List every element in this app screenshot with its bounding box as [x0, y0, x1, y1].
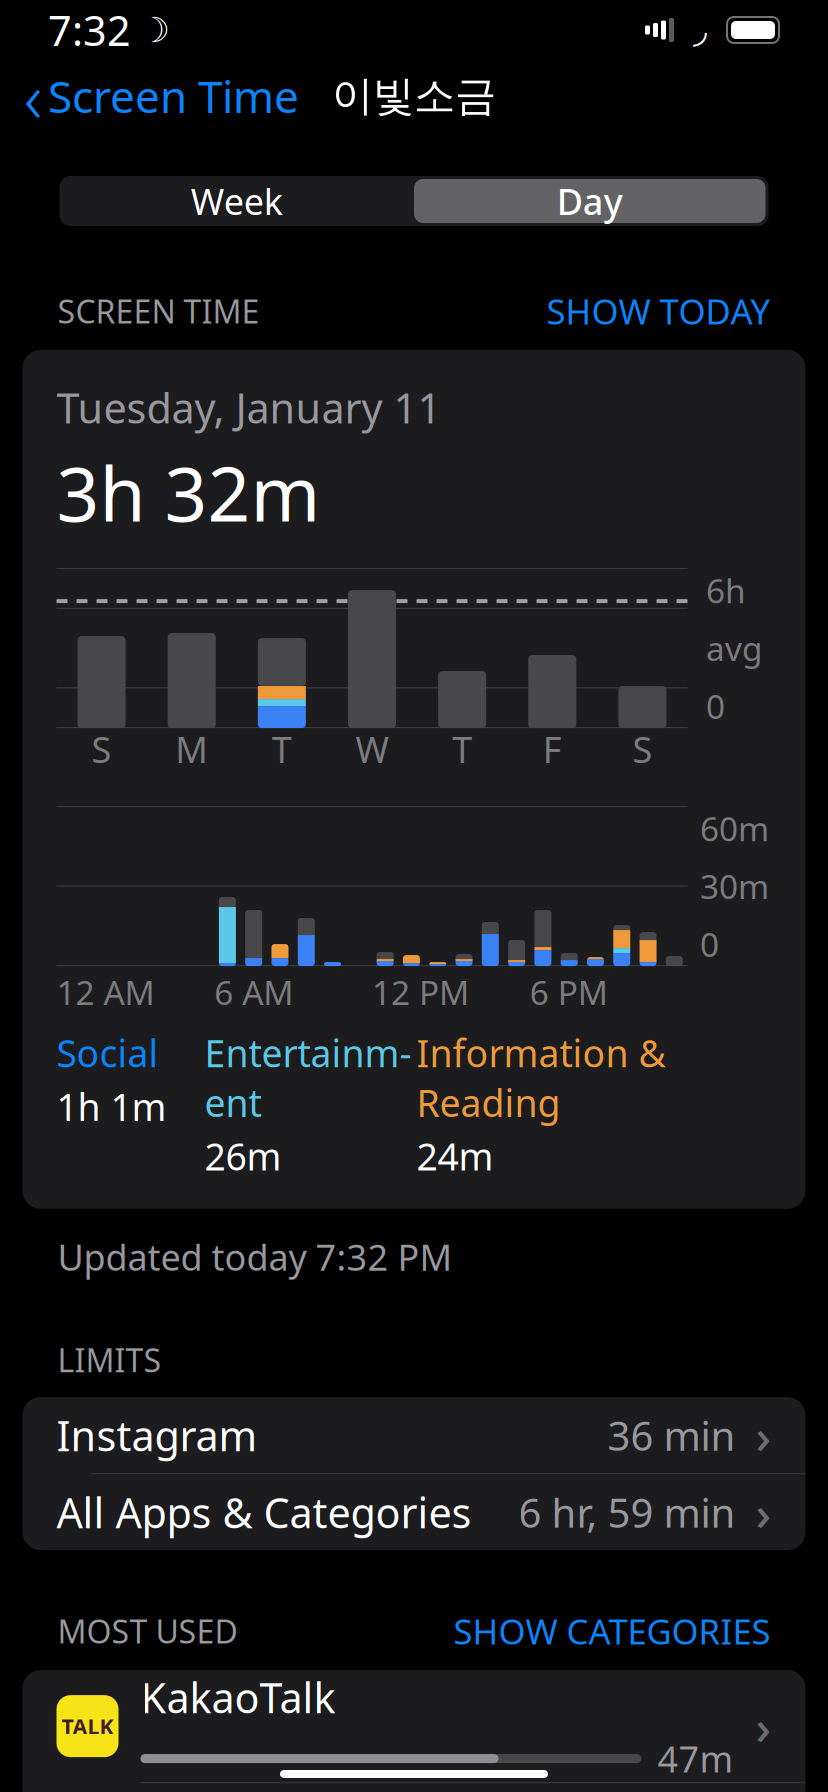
- button[interactable]: Instagram: [22, 1397, 805, 1474]
- staticText: 26m: [204, 1131, 281, 1181]
- staticText: F: [543, 725, 562, 773]
- staticText: MOST USED: [57, 1610, 237, 1652]
- button[interactable]: SHOW TODAY: [546, 288, 770, 334]
- staticText: TALK: [61, 1712, 113, 1740]
- staticText: ›: [755, 1480, 771, 1544]
- button[interactable]: SHOW CATEGORIES: [453, 1608, 770, 1654]
- staticText: ‹: [24, 50, 42, 142]
- staticText: 6 PM: [530, 970, 608, 1014]
- staticText: 6 hr, 59 min: [518, 1486, 735, 1539]
- button[interactable]: Week: [59, 176, 414, 226]
- staticText: Tuesday, January 11: [56, 380, 441, 435]
- staticText: S: [632, 725, 652, 773]
- staticText: ◞: [693, 10, 707, 50]
- staticText: ☽: [139, 10, 170, 50]
- staticText: Updated today 7:32 PM: [57, 1233, 452, 1281]
- staticText: All Apps & Categories: [56, 1485, 471, 1540]
- staticText: Information & Reading: [416, 1028, 665, 1127]
- staticText: Instagram: [56, 1408, 257, 1463]
- staticText: T: [272, 725, 292, 773]
- staticText: Week: [191, 177, 283, 225]
- staticText: 12 PM: [372, 970, 469, 1014]
- staticText: T: [452, 725, 472, 773]
- staticText: Screen Time: [48, 67, 299, 125]
- staticText: 0: [706, 684, 725, 728]
- staticText: 30m: [700, 864, 769, 908]
- staticText: avg: [706, 626, 763, 670]
- staticText: 7:32: [48, 3, 131, 57]
- staticText: W: [355, 725, 388, 773]
- staticText: 6 AM: [214, 970, 293, 1014]
- button[interactable]: Day: [414, 176, 768, 226]
- staticText: SHOW TODAY: [546, 288, 770, 334]
- staticText: 47m: [657, 1735, 733, 1782]
- staticText: S: [92, 725, 112, 773]
- button[interactable]: ‹: [24, 44, 299, 148]
- staticText: M: [175, 725, 208, 773]
- staticText: 24m: [416, 1131, 493, 1181]
- staticText: 0: [700, 922, 719, 966]
- staticText: 36 min: [607, 1409, 735, 1462]
- staticText: ›: [755, 1403, 771, 1467]
- staticText: 3h 32m: [56, 443, 320, 542]
- staticText: 12 AM: [56, 970, 154, 1014]
- staticText: 6h: [706, 568, 746, 612]
- button[interactable]: TALK: [22, 1670, 805, 1782]
- staticText: 이빛소금: [332, 71, 496, 121]
- staticText: LIMITS: [57, 1339, 161, 1381]
- staticText: Social: [56, 1028, 158, 1078]
- staticText: 60m: [700, 806, 769, 850]
- staticText: SHOW CATEGORIES: [453, 1608, 770, 1654]
- staticText: 1h 1m: [56, 1082, 166, 1131]
- staticText: Entertainment: [204, 1028, 411, 1127]
- staticText: SCREEN TIME: [57, 290, 259, 332]
- button[interactable]: All Apps & Categories: [22, 1474, 805, 1550]
- staticText: KakaoTalk: [140, 1670, 335, 1725]
- staticText: ›: [755, 1694, 771, 1758]
- staticText: Day: [557, 177, 623, 225]
